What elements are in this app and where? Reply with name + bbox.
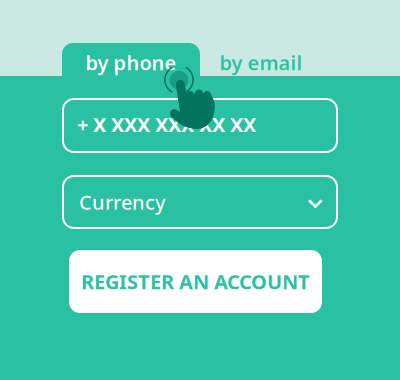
staticText: + X XXX XXX XX XX <box>77 111 256 138</box>
button[interactable]: + X XXX XXX XX XX <box>63 99 337 152</box>
button[interactable]: by phone <box>62 43 200 76</box>
staticText: by email <box>219 49 302 76</box>
button[interactable]: Currency <box>63 176 337 228</box>
staticText: REGISTER AN ACCOUNT <box>81 268 310 295</box>
button[interactable]: by email <box>206 43 316 76</box>
staticText: Currency <box>79 189 166 215</box>
staticText: by phone <box>85 49 176 76</box>
button[interactable]: REGISTER AN ACCOUNT <box>69 250 322 313</box>
